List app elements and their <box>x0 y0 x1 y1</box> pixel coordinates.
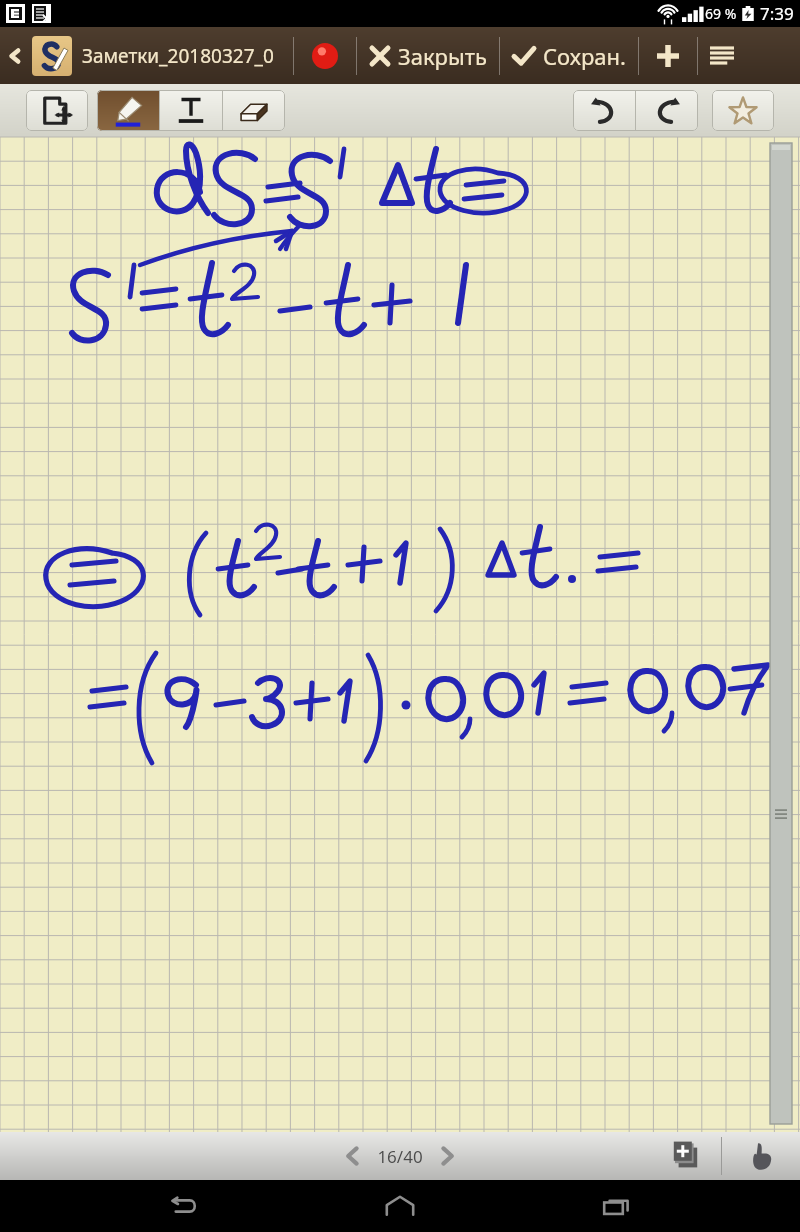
button[interactable]: Menu <box>698 27 746 84</box>
staticText: Заметки_20180327_0… <box>82 43 287 69</box>
staticText: 69 % <box>705 4 737 23</box>
button[interactable]: Add page <box>653 1132 721 1180</box>
staticText: 7:39 <box>760 2 794 25</box>
button[interactable]: Сохран. <box>512 27 626 84</box>
button[interactable]: App icon <box>32 36 72 76</box>
button[interactable]: Recent apps <box>583 1180 653 1232</box>
button[interactable]: Redo <box>636 90 698 131</box>
button[interactable]: Back <box>148 1180 218 1232</box>
staticText: Закрыть <box>398 41 487 71</box>
button[interactable]: Add <box>639 27 697 84</box>
staticText: 16/40 <box>377 1145 423 1168</box>
button[interactable]: Next page <box>423 1132 471 1180</box>
button[interactable]: Text <box>160 90 222 131</box>
staticText: Сохран. <box>543 41 626 71</box>
button[interactable]: Favourite <box>712 90 774 131</box>
button[interactable]: Back <box>0 27 30 84</box>
button[interactable]: Home <box>365 1180 435 1232</box>
button[interactable]: Undo <box>573 90 635 131</box>
button[interactable]: Hand tool <box>722 1132 800 1180</box>
button[interactable]: Move page <box>26 90 88 131</box>
button[interactable]: Pen <box>97 90 159 131</box>
button[interactable]: Eraser <box>223 90 285 131</box>
button[interactable]: Record <box>294 27 356 84</box>
button[interactable]: Заметки_20180327_0… <box>82 43 287 69</box>
button[interactable]: Previous page <box>329 1132 377 1180</box>
button[interactable]: Закрыть <box>369 27 487 84</box>
